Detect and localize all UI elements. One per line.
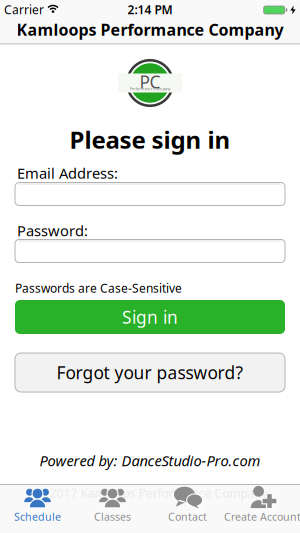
staticText: Forgot your password?: [56, 361, 243, 384]
staticText: Schedule: [14, 509, 61, 524]
staticText: Email Address:: [17, 163, 118, 183]
staticText: PC: [139, 70, 160, 93]
button[interactable]: Contact: [145, 482, 229, 528]
staticText: Performance Company: [129, 86, 170, 91]
button[interactable]: Powered by: DanceStudio-Pro.com: [39, 451, 260, 470]
button[interactable]: Classes: [70, 482, 154, 528]
button[interactable]: Create Account: [220, 482, 300, 528]
staticText: Carrier: [4, 1, 44, 17]
staticText: Classes: [94, 509, 131, 524]
staticText: Please sign in: [69, 124, 230, 155]
staticText: Passwords are Case-Sensitive: [15, 280, 182, 296]
staticText: © 2017 Kamloops Performance Company: [36, 485, 267, 501]
button[interactable]: Forgot your password?: [15, 353, 285, 392]
button[interactable]: Sign in: [15, 300, 285, 334]
staticText: Contact: [168, 509, 207, 524]
button[interactable]: Schedule: [0, 482, 79, 528]
staticText: Sign in: [122, 305, 178, 328]
staticText: Password:: [17, 221, 88, 240]
staticText: Kamloops Performance Company: [16, 19, 283, 40]
staticText: 2:14 PM: [127, 1, 172, 17]
staticText: Create Account: [224, 509, 300, 524]
staticText: Powered by: DanceStudio-Pro.com: [39, 451, 260, 470]
